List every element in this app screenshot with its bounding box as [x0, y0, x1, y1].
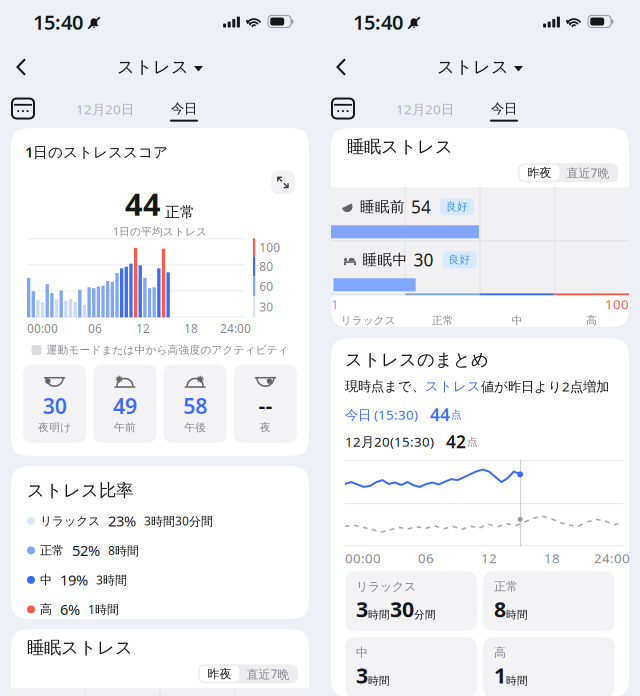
staticText: 12月20日: [396, 100, 454, 118]
staticText: 時間: [506, 608, 528, 621]
staticText: 30: [390, 595, 414, 623]
staticText: 正常: [165, 203, 195, 221]
staticText: 12: [481, 549, 497, 567]
staticText: 点: [467, 435, 478, 448]
staticText: 12月20日: [76, 100, 134, 118]
staticText: 良好: [446, 200, 468, 213]
staticText: 58: [183, 391, 207, 420]
button[interactable]: 今日: [482, 96, 526, 122]
staticText: 1時間: [88, 601, 119, 617]
staticText: 中: [356, 645, 368, 660]
staticText: 23%: [108, 511, 136, 531]
staticText: 時間: [506, 674, 528, 687]
staticText: 12月20(15:30): [345, 433, 434, 450]
button[interactable]: 戻る: [0, 49, 41, 85]
staticText: 15:40: [353, 9, 403, 35]
staticText: 昨夜: [527, 165, 551, 180]
staticText: ストレス比率: [27, 480, 133, 501]
staticText: 午前: [114, 421, 136, 434]
staticText: ストレス: [437, 56, 509, 78]
staticText: 1: [494, 661, 506, 689]
staticText: 30: [413, 248, 433, 271]
staticText: 12: [136, 320, 150, 336]
staticText: ストレス: [117, 56, 189, 78]
staticText: 44: [125, 183, 161, 224]
staticText: 睡眠ストレス: [347, 136, 453, 157]
button[interactable]: 昨夜: [519, 165, 559, 181]
staticText: 時間: [368, 674, 390, 687]
button[interactable]: 12月20日: [66, 94, 144, 124]
staticText: 00:00: [345, 549, 381, 567]
staticText: 30: [259, 299, 273, 315]
staticText: 睡眠中: [362, 251, 407, 269]
button[interactable]: 直近7晩: [559, 165, 616, 181]
staticText: リラックス: [341, 314, 396, 327]
staticText: 1: [331, 295, 339, 313]
staticText: 睡眠ストレス: [27, 637, 133, 658]
staticText: 分間: [414, 608, 436, 621]
staticText: 60: [259, 278, 273, 294]
staticText: 8: [494, 595, 506, 623]
staticText: 夜明け: [38, 421, 71, 434]
staticText: 42: [446, 430, 466, 453]
staticText: 3時間: [96, 572, 127, 588]
staticText: ストレスのまとめ: [345, 349, 489, 370]
button[interactable]: 戻る: [320, 49, 361, 85]
staticText: 18: [544, 549, 560, 567]
staticText: 中: [512, 314, 523, 327]
staticText: 3時間30分間: [144, 513, 213, 529]
staticText: 高: [494, 645, 506, 660]
staticText: 3: [356, 595, 368, 623]
staticText: 8時間: [108, 542, 139, 558]
staticText: 44: [430, 403, 450, 426]
staticText: リラックス: [40, 514, 100, 528]
staticText: 1日の平均ストレス: [113, 224, 207, 238]
staticText: 15:40: [33, 9, 83, 35]
staticText: 高: [586, 314, 597, 327]
staticText: 00:00: [27, 320, 58, 336]
staticText: 現時点まで、: [345, 378, 425, 394]
staticText: 直近7晩: [566, 165, 609, 181]
button[interactable]: カレンダー: [0, 93, 44, 124]
staticText: 1日のストレススコア: [25, 142, 168, 161]
staticText: 睡眠前: [360, 198, 405, 216]
staticText: 今日: [171, 100, 197, 117]
staticText: ストレス: [425, 378, 481, 394]
staticText: 06: [88, 320, 102, 336]
staticText: --: [258, 391, 272, 420]
staticText: 6%: [60, 600, 80, 619]
staticText: 44: [383, 543, 421, 587]
staticText: 80: [259, 258, 273, 274]
staticText: 値が昨日より2点増加: [481, 377, 609, 395]
button[interactable]: 拡大: [271, 161, 309, 194]
button[interactable]: 昨夜: [199, 666, 239, 682]
staticText: 54: [411, 195, 431, 218]
staticText: 100: [259, 239, 280, 255]
staticText: 24:00: [594, 549, 630, 567]
button[interactable]: 今日: [162, 96, 206, 122]
staticText: リラックス: [356, 579, 416, 594]
staticText: 49: [113, 391, 137, 420]
staticText: 直近7晩: [246, 666, 289, 682]
staticText: 52%: [72, 541, 100, 560]
staticText: 今日 (15:30): [345, 406, 418, 423]
staticText: 高: [40, 602, 52, 617]
staticText: 昨夜: [207, 666, 231, 681]
button[interactable]: 12月20日: [386, 94, 464, 124]
staticText: 正常: [494, 579, 518, 594]
button[interactable]: 直近7晩: [239, 666, 296, 682]
staticText: 良好: [448, 253, 470, 266]
staticText: 正常: [432, 314, 454, 327]
button[interactable]: カレンダー: [320, 93, 364, 124]
staticText: 中: [40, 572, 52, 587]
staticText: 06: [418, 549, 434, 567]
staticText: 24:00: [220, 320, 251, 336]
staticText: 正常: [40, 543, 64, 558]
staticText: 30: [43, 391, 67, 420]
staticText: 18: [184, 320, 198, 336]
staticText: 点: [451, 408, 462, 421]
staticText: 3: [356, 661, 368, 689]
staticText: 今日: [491, 100, 517, 117]
staticText: 午後: [184, 421, 206, 434]
staticText: 運動モードまたは中から高強度のアクティビティ: [46, 343, 288, 356]
